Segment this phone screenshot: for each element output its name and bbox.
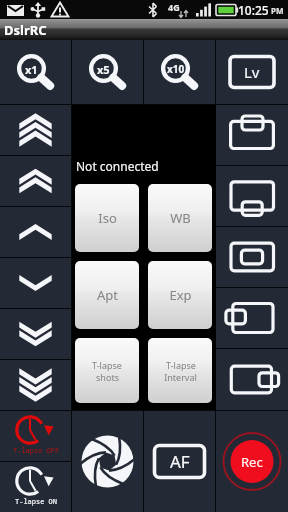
button[interactable]: Record — [216, 411, 288, 512]
staticText: x1 — [25, 62, 38, 77]
staticText: T-lapse — [166, 359, 196, 371]
button[interactable]: Decrease 2 — [0, 309, 71, 359]
staticText: 4G — [168, 1, 180, 13]
button[interactable]: Zoom x5 — [72, 40, 143, 104]
button[interactable]: Apt — [75, 261, 139, 329]
staticText: T-lapse ON — [15, 497, 57, 507]
staticText: x10 — [167, 62, 185, 76]
button[interactable]: Timelapse on — [0, 462, 71, 512]
button[interactable]: Increase 1 — [0, 207, 71, 257]
button[interactable]: Shutter — [72, 411, 143, 512]
staticText: Apt — [97, 286, 118, 304]
button[interactable]: Camera mode — [216, 105, 288, 165]
staticText: Interval — [164, 371, 197, 383]
button[interactable]: Center mode — [216, 227, 288, 287]
button[interactable]: Decrease 1 — [0, 258, 71, 308]
button[interactable]: Live view — [216, 40, 288, 104]
staticText: shots — [96, 371, 119, 383]
button[interactable]: Increase 2 — [0, 156, 71, 206]
button[interactable]: Timelapse off — [0, 411, 71, 461]
button[interactable]: Zoom x10 — [144, 40, 215, 104]
button[interactable]: Decrease 3 — [0, 360, 71, 410]
button[interactable]: T-lapse — [75, 338, 139, 403]
button[interactable]: T-lapse — [148, 338, 212, 403]
button[interactable]: Exp — [148, 261, 212, 329]
staticText: Not connected — [76, 158, 159, 174]
staticText: Iso — [98, 209, 117, 227]
button[interactable]: Left mode — [216, 288, 288, 348]
button[interactable]: Increase 3 — [0, 105, 71, 155]
button[interactable]: Iso — [75, 184, 139, 252]
button[interactable]: WB — [148, 184, 212, 252]
staticText: T-lapse — [92, 359, 122, 371]
staticText: WB — [170, 209, 191, 227]
staticText: T-lapse OFF — [13, 446, 60, 456]
button[interactable]: Right mode — [216, 349, 288, 410]
staticText: DslrRC — [4, 21, 47, 39]
staticText: 10:25 — [238, 2, 269, 18]
staticText: x5 — [97, 62, 110, 77]
button[interactable]: Screen mode — [216, 166, 288, 226]
staticText: Lv — [244, 62, 260, 82]
staticText: Rec — [241, 453, 263, 471]
staticText: AF — [170, 450, 190, 473]
staticText: Exp — [169, 286, 192, 304]
button[interactable]: Autofocus — [144, 411, 215, 512]
button[interactable]: Zoom x1 — [0, 40, 71, 104]
staticText: PM — [271, 5, 284, 16]
